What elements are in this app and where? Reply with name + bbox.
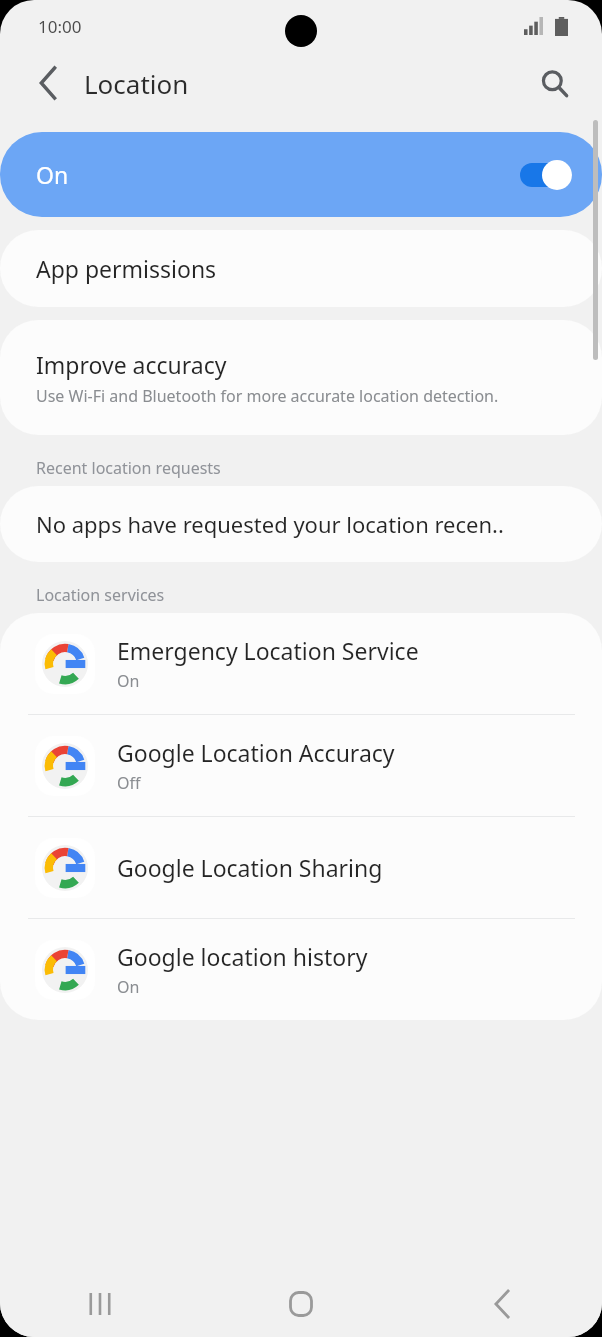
- button[interactable]: Recents: [0, 1271, 200, 1337]
- staticText: On: [117, 976, 140, 998]
- button[interactable]: No apps have requested your location rec…: [0, 486, 602, 562]
- button[interactable]: Emergency Location Service: [0, 613, 602, 714]
- button[interactable]: Google location history: [0, 919, 602, 1020]
- button[interactable]: On: [0, 132, 602, 217]
- button[interactable]: Back: [401, 1271, 602, 1337]
- button[interactable]: Google Location Accuracy: [0, 715, 602, 816]
- staticText: Use Wi-Fi and Bluetooth for more accurat…: [36, 385, 499, 407]
- staticText: App permissions: [36, 253, 217, 284]
- staticText: Location services: [36, 584, 165, 606]
- button[interactable]: App permissions: [0, 230, 602, 307]
- button[interactable]: Improve accuracy: [0, 320, 602, 435]
- staticText: 10:00: [38, 15, 82, 38]
- staticText: On: [36, 159, 69, 190]
- staticText: Location: [84, 66, 189, 101]
- staticText: Emergency Location Service: [117, 635, 419, 666]
- staticText: No apps have requested your location rec…: [36, 509, 504, 539]
- button[interactable]: Home: [200, 1271, 401, 1337]
- staticText: Off: [117, 772, 141, 794]
- staticText: Recent location requests: [36, 457, 221, 479]
- staticText: On: [117, 670, 140, 692]
- button[interactable]: Back: [24, 59, 72, 107]
- staticText: Improve accuracy: [36, 349, 227, 380]
- staticText: Google Location Sharing: [117, 852, 383, 883]
- staticText: Google Location Accuracy: [117, 737, 395, 768]
- button[interactable]: Location toggle: [520, 160, 572, 190]
- button[interactable]: Google Location Sharing: [0, 817, 602, 918]
- staticText: Google location history: [117, 941, 368, 972]
- button[interactable]: Search: [530, 59, 578, 107]
